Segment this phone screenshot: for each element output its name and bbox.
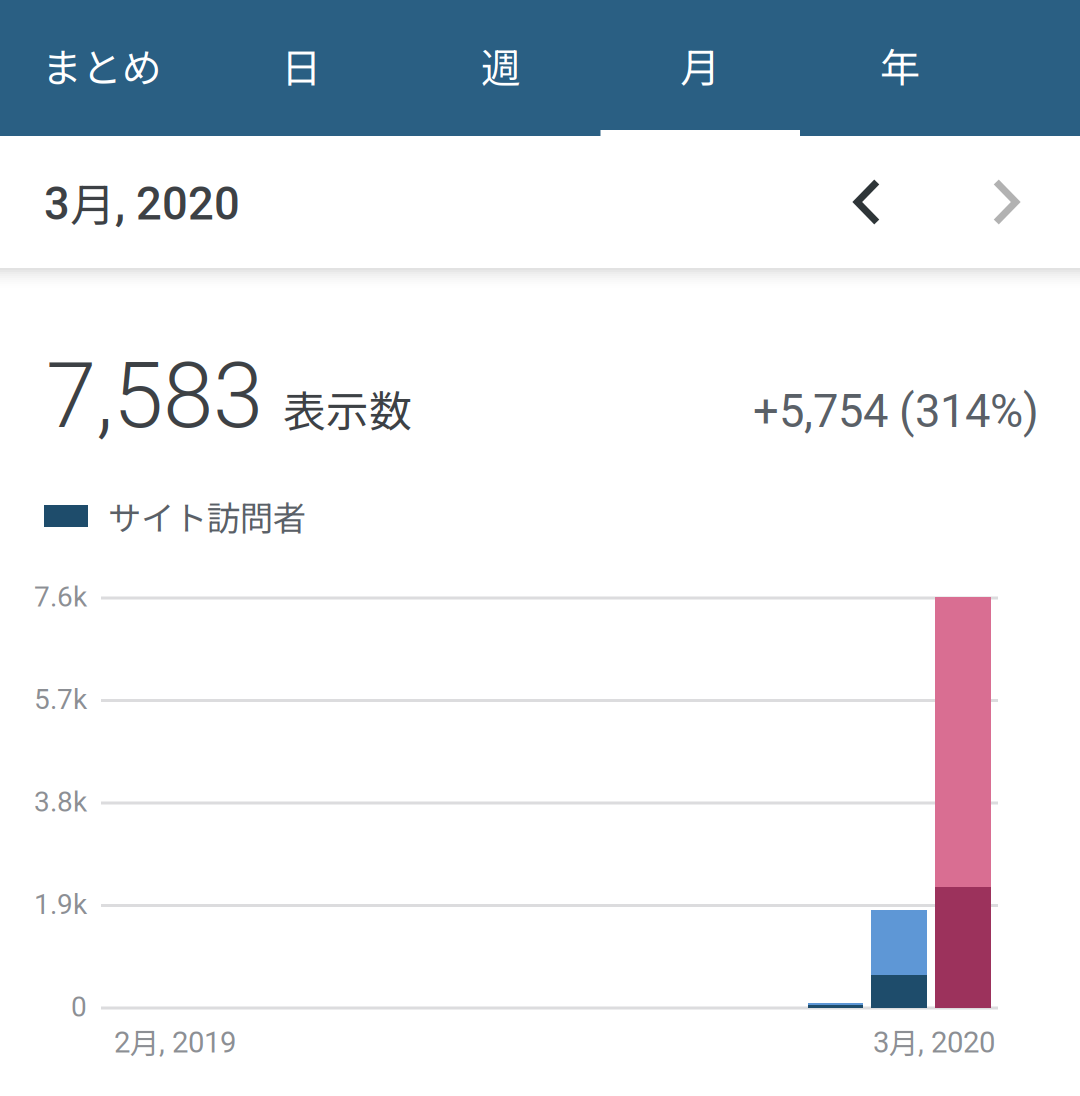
staticText: まとめ (42, 36, 162, 94)
button[interactable]: 日 (201, 0, 401, 136)
staticText: 7,583 (46, 343, 263, 449)
staticText: サイト訪問者 (108, 492, 306, 540)
staticText: 3.8k (34, 786, 87, 818)
button[interactable]: サイト訪問者 (0, 499, 1080, 533)
staticText: 年 (880, 36, 920, 94)
button[interactable]: 次の期間 (951, 136, 1061, 268)
staticText: 7.6k (34, 581, 87, 613)
staticText: 5.7k (34, 683, 87, 716)
staticText: +5,754 (314%) (753, 385, 1039, 438)
staticText: 2月, 2019 (114, 1020, 236, 1062)
button[interactable]: 年 (800, 0, 999, 136)
staticText: 1.9k (34, 888, 87, 921)
staticText: 表示数 (263, 378, 412, 439)
staticText: 3月, 2020 (873, 1020, 995, 1062)
button[interactable]: 前の期間 (812, 136, 922, 268)
staticText: 週 (481, 36, 521, 94)
staticText: 日 (281, 36, 321, 94)
staticText: 0 (71, 991, 87, 1023)
button[interactable]: 月 (600, 0, 800, 136)
button[interactable]: まとめ (2, 0, 201, 136)
button[interactable]: 週 (401, 0, 600, 136)
staticText: 月 (680, 36, 720, 94)
staticText: 3月, 2020 (44, 169, 240, 235)
